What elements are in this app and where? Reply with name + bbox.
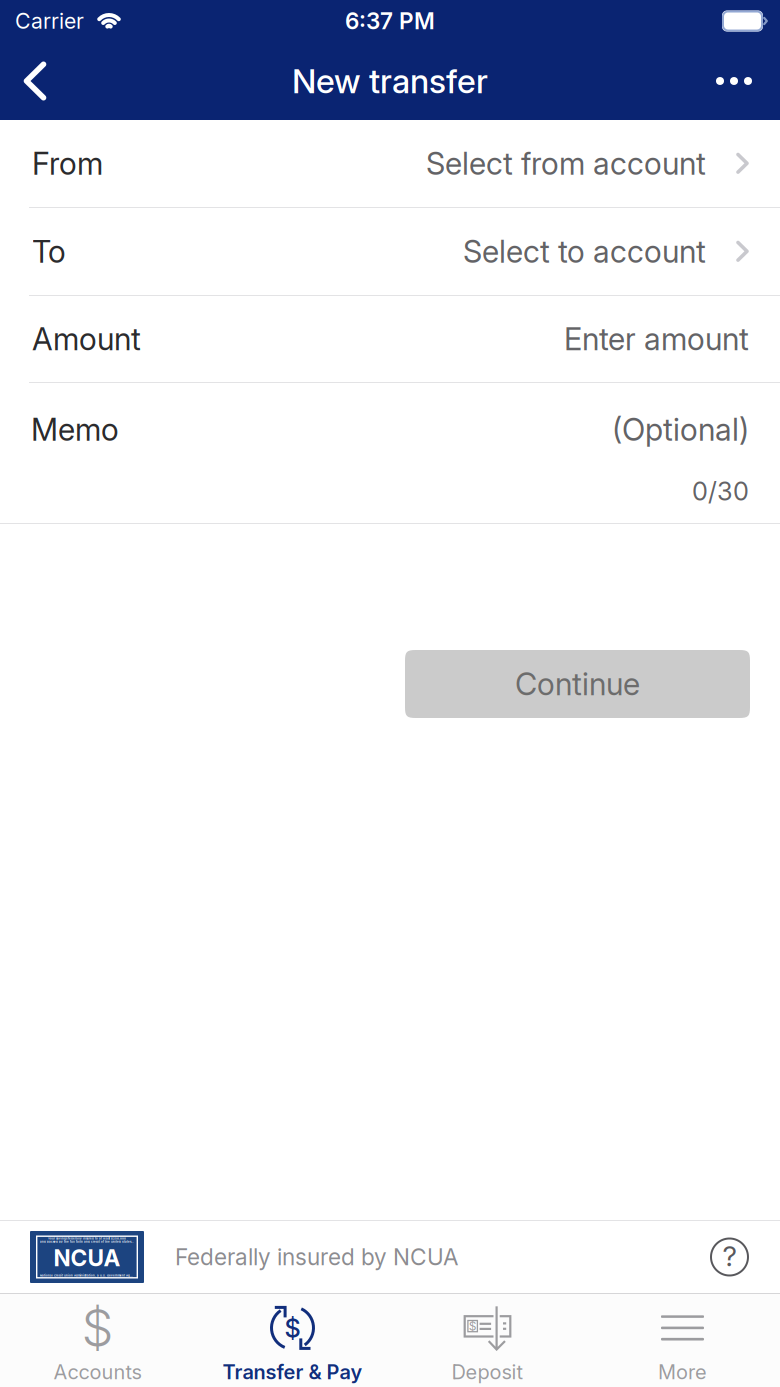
staticText: Continue	[515, 665, 640, 702]
staticText: (Optional)	[612, 411, 749, 448]
staticText: Transfer & Pay	[222, 1360, 362, 1384]
staticText: Memo	[31, 411, 119, 448]
button[interactable]: Memo	[0, 383, 780, 523]
staticText: $	[284, 1313, 300, 1344]
button[interactable]: To	[0, 208, 780, 295]
staticText: $	[81, 1297, 113, 1358]
button[interactable]: Back	[0, 42, 67, 120]
staticText: Your savings federally insured to at lea…	[48, 1237, 126, 1240]
staticText: Federally insured by NCUA	[175, 1243, 458, 1271]
staticText: New transfer	[292, 61, 488, 101]
button[interactable]: More	[585, 1294, 780, 1387]
staticText: More	[658, 1360, 707, 1384]
staticText: $	[469, 1319, 477, 1333]
staticText: Carrier	[15, 8, 84, 34]
button[interactable]: From	[0, 120, 780, 207]
staticText: Enter amount	[564, 320, 749, 357]
staticText: 6:37 PM	[345, 7, 435, 35]
staticText: and backed by the full faith and credit …	[40, 1240, 134, 1243]
button[interactable]: More options	[696, 42, 780, 120]
button[interactable]: Help	[710, 1237, 749, 1276]
staticText: Amount	[32, 320, 141, 357]
button[interactable]: Continue	[405, 650, 750, 718]
staticText: Deposit	[451, 1360, 523, 1384]
button[interactable]: $	[0, 1294, 195, 1387]
staticText: To	[32, 233, 66, 270]
button[interactable]: $	[390, 1294, 585, 1387]
staticText: From	[32, 145, 103, 182]
staticText: 0/30	[692, 476, 749, 507]
staticText: National Credit Union Administration, a …	[40, 1274, 134, 1277]
button[interactable]: $	[195, 1294, 390, 1387]
staticText: Select to account	[463, 233, 706, 270]
staticText: Accounts	[53, 1360, 141, 1384]
staticText: NCUA	[53, 1244, 120, 1272]
staticText: ?	[722, 1239, 736, 1273]
button[interactable]: Amount	[0, 296, 780, 382]
staticText: Select from account	[426, 145, 706, 182]
